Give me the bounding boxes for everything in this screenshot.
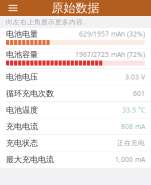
staticText: 电池容量 <box>6 50 38 59</box>
staticText: 601 <box>133 89 145 98</box>
button[interactable]: 电池电量 <box>0 28 151 48</box>
staticText: 电池温度 <box>6 105 38 115</box>
staticText: 电池电量 <box>6 29 38 39</box>
staticText: 33.5 °C <box>122 106 145 114</box>
button[interactable]: Menu <box>3 0 23 16</box>
staticText: 3.03 V <box>125 73 145 81</box>
staticText: 1,000 mA <box>115 155 145 164</box>
staticText: 正在充电 <box>117 139 145 147</box>
staticText: 电池电压 <box>6 72 38 82</box>
staticText: 原始数据 <box>51 1 99 15</box>
staticText: 1967/2725 mAh (72%) <box>75 50 145 59</box>
staticText: 最大充电电流 <box>6 155 54 164</box>
button[interactable]: 最大充电电流 <box>0 151 151 167</box>
button[interactable]: 电池温度 <box>0 102 151 118</box>
button[interactable]: 电池电压 <box>0 69 151 85</box>
button[interactable]: 电池容量 <box>0 48 151 68</box>
staticText: 向左右上角显示更多内容。 <box>6 18 90 26</box>
staticText: 808 mA <box>121 122 145 131</box>
button[interactable]: 循环充电次数 <box>0 85 151 101</box>
button[interactable]: 充电电流 <box>0 118 151 134</box>
staticText: 充电状态 <box>6 138 38 148</box>
staticText: 循环充电次数 <box>6 89 54 98</box>
staticText: 629/1957 mAh (32%) <box>79 30 145 38</box>
button[interactable]: 充电状态 <box>0 135 151 151</box>
staticText: 充电电流 <box>6 122 38 131</box>
